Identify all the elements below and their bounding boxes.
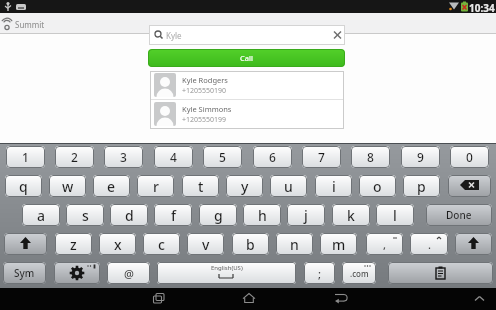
button[interactable]: 0 — [450, 146, 489, 168]
staticText: 3 — [120, 149, 127, 165]
button[interactable]: o — [359, 175, 396, 197]
staticText: Summit — [15, 19, 45, 30]
button[interactable]: i — [315, 175, 352, 197]
button[interactable]: Sym — [3, 262, 46, 284]
button[interactable]: z — [55, 233, 92, 255]
staticText: b — [246, 235, 255, 254]
staticText: Kyle Simmons — [182, 104, 232, 114]
button[interactable]: c — [143, 233, 180, 255]
button[interactable]: q — [5, 175, 42, 197]
staticText: ; — [318, 266, 322, 281]
button[interactable]: 3 — [104, 146, 143, 168]
button[interactable]: l — [376, 204, 414, 226]
button[interactable]: k — [332, 204, 370, 226]
staticText: s — [82, 206, 89, 225]
staticText: 7 — [318, 149, 325, 165]
button[interactable]: English(US) — [157, 262, 296, 284]
staticText: h — [258, 206, 267, 225]
button[interactable]: Done — [426, 204, 492, 226]
staticText: q — [19, 177, 28, 196]
staticText: f — [171, 206, 176, 225]
staticText: p — [417, 177, 426, 196]
button[interactable]: y — [226, 175, 263, 197]
button[interactable] — [464, 288, 494, 310]
staticText: Kyle — [166, 30, 182, 41]
button[interactable]: w — [49, 175, 86, 197]
staticText: c — [158, 235, 165, 254]
button[interactable]: m — [320, 233, 357, 255]
staticText: Done — [446, 208, 472, 222]
staticText: 9 — [417, 149, 424, 165]
button[interactable]: b — [232, 233, 269, 255]
staticText: @ — [124, 266, 134, 281]
button[interactable]: 7 — [302, 146, 341, 168]
button[interactable]: n — [276, 233, 313, 255]
staticText: w — [62, 177, 74, 196]
button[interactable]: @ — [107, 262, 150, 284]
button[interactable]: , — [366, 233, 403, 255]
staticText: 5 — [219, 149, 226, 165]
button[interactable]: 9 — [401, 146, 440, 168]
button[interactable] — [455, 233, 492, 255]
button[interactable] — [448, 175, 491, 197]
staticText: k — [347, 206, 355, 225]
staticText: 8 — [367, 149, 374, 165]
staticText: z — [70, 235, 77, 254]
button[interactable]: 1 — [6, 146, 45, 168]
button[interactable]: ; — [304, 262, 335, 284]
staticText: o — [373, 177, 382, 196]
staticText: y — [241, 177, 249, 196]
staticText: m — [332, 235, 346, 254]
staticText: x — [114, 235, 122, 254]
button[interactable]: s — [66, 204, 104, 226]
button[interactable] — [228, 288, 268, 310]
staticText: 2 — [71, 149, 78, 165]
button[interactable]: . — [410, 233, 448, 255]
button[interactable]: v — [187, 233, 224, 255]
button[interactable]: j — [287, 204, 325, 226]
button[interactable]: r — [137, 175, 174, 197]
button[interactable]: Kyle Simmons — [150, 100, 344, 128]
staticText: 4 — [170, 149, 177, 165]
button[interactable]: h — [243, 204, 281, 226]
button[interactable] — [140, 288, 180, 310]
staticText: Kyle Rodgers — [182, 75, 228, 85]
staticText: l — [393, 206, 397, 225]
button[interactable] — [4, 233, 47, 255]
button[interactable]: Call — [148, 49, 345, 67]
button[interactable]: u — [270, 175, 307, 197]
staticText: e — [107, 177, 116, 196]
staticText: Call — [240, 53, 253, 63]
button[interactable]: 2 — [55, 146, 94, 168]
button[interactable]: g — [199, 204, 237, 226]
staticText: 6 — [269, 149, 276, 165]
button[interactable]: 4 — [154, 146, 193, 168]
staticText: r — [153, 177, 159, 196]
button[interactable]: f — [154, 204, 192, 226]
button[interactable]: Kyle Rodgers — [150, 71, 344, 99]
staticText: Sym — [14, 266, 35, 280]
button[interactable]: e — [93, 175, 130, 197]
button[interactable]: 6 — [253, 146, 292, 168]
button[interactable]: Kyle — [149, 25, 345, 45]
button[interactable]: d — [110, 204, 148, 226]
button[interactable]: 8 — [351, 146, 390, 168]
button[interactable]: a — [22, 204, 60, 226]
staticText: English(US) — [211, 264, 243, 272]
staticText: v — [202, 235, 210, 254]
button[interactable] — [388, 262, 493, 284]
button[interactable]: x — [99, 233, 136, 255]
staticText: g — [214, 206, 223, 225]
button[interactable] — [320, 288, 360, 310]
button[interactable]: 5 — [203, 146, 242, 168]
button[interactable] — [54, 262, 100, 284]
staticText: 10:34 — [469, 1, 495, 14]
staticText: 1 — [22, 149, 29, 165]
button[interactable]: p — [403, 175, 440, 197]
staticText: n — [290, 235, 299, 254]
button[interactable]: t — [182, 175, 219, 197]
staticText: u — [284, 177, 293, 196]
staticText: d — [125, 206, 134, 225]
button[interactable]: .com — [342, 262, 376, 284]
staticText: j — [304, 206, 308, 225]
